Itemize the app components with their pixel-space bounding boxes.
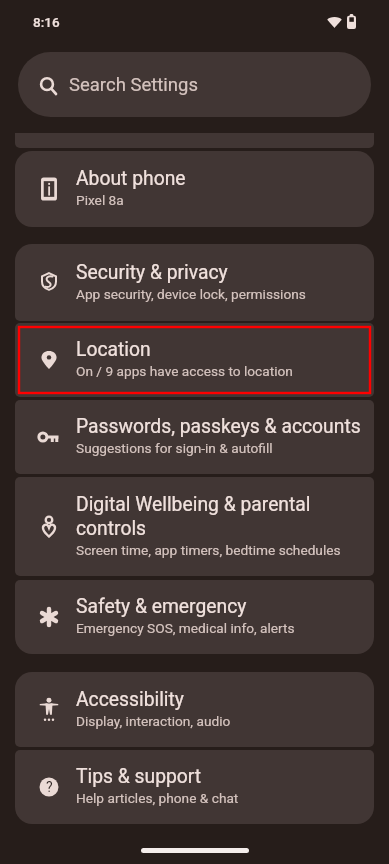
- staticText: About phone: [76, 167, 186, 190]
- staticText: Tips & support: [76, 765, 202, 788]
- button[interactable]: About phone: [15, 151, 374, 227]
- staticText: Accessibility: [76, 688, 184, 711]
- button[interactable]: Search Settings: [18, 52, 371, 117]
- button[interactable]: Passwords, passkeys & accounts: [15, 400, 374, 474]
- staticText: Suggestions for sign-in & autofill: [76, 440, 273, 456]
- button[interactable]: Location: [15, 323, 374, 397]
- button[interactable]: Safety & emergency: [15, 580, 374, 654]
- button[interactable]: ?: [15, 750, 374, 824]
- staticText: 8:16: [33, 14, 60, 30]
- button[interactable]: Security & privacy: [15, 244, 374, 321]
- staticText: On / 9 apps have access to location: [76, 363, 293, 379]
- button[interactable]: Digital Wellbeing & parental controls: [15, 477, 374, 576]
- staticText: Location: [76, 338, 151, 361]
- staticText: Emergency SOS, medical info, alerts: [76, 620, 295, 636]
- staticText: Digital Wellbeing & parental controls: [76, 493, 368, 540]
- staticText: Display, interaction, audio: [76, 713, 231, 729]
- button[interactable]: Accessibility: [15, 672, 374, 747]
- staticText: Pixel 8a: [76, 192, 124, 208]
- staticText: Search Settings: [69, 74, 198, 96]
- staticText: Help articles, phone & chat: [76, 790, 239, 806]
- staticText: Security & privacy: [76, 261, 228, 284]
- staticText: App security, device lock, permissions: [76, 286, 306, 302]
- staticText: Screen time, app timers, bedtime schedul…: [76, 542, 341, 558]
- staticText: Passwords, passkeys & accounts: [76, 415, 361, 438]
- staticText: Safety & emergency: [76, 595, 247, 618]
- staticText: ?: [46, 779, 53, 795]
